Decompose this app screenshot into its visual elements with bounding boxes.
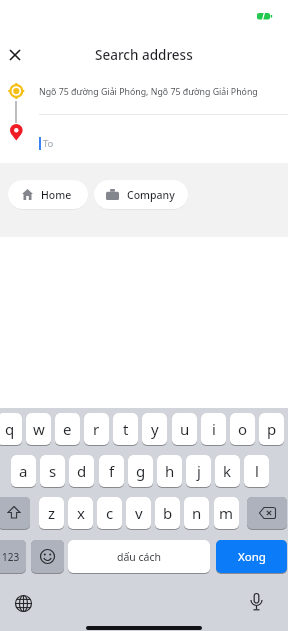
button[interactable]: l	[244, 455, 269, 487]
button[interactable]: Home	[8, 180, 88, 209]
staticText: e	[63, 419, 72, 439]
staticText: d	[77, 461, 87, 481]
button[interactable]: s	[40, 455, 65, 487]
staticText: g	[136, 461, 146, 481]
button[interactable]: b	[155, 497, 180, 529]
button[interactable]: t	[113, 413, 138, 445]
button[interactable]: j	[186, 455, 211, 487]
button[interactable]: To	[39, 136, 288, 151]
staticText: m	[219, 503, 234, 523]
staticText: b	[163, 503, 173, 523]
button[interactable]: n	[184, 497, 209, 529]
staticText: To	[43, 137, 54, 150]
staticText: Search address	[95, 46, 193, 64]
staticText: c	[106, 503, 114, 523]
staticText: Ngõ 75 đường Giải Phóng, Ngõ 75 đường Gi…	[39, 86, 258, 98]
staticText: p	[267, 419, 277, 439]
staticText: u	[180, 419, 190, 439]
button[interactable]: q	[0, 413, 22, 445]
staticText: dấu cách	[117, 550, 162, 564]
button[interactable]	[241, 586, 271, 618]
staticText: f	[109, 461, 115, 481]
button[interactable]: Ngõ 75 đường Giải Phóng, Ngõ 75 đường Gi…	[39, 84, 288, 100]
staticText: Company	[127, 188, 175, 202]
button[interactable]: i	[201, 413, 226, 445]
staticText: n	[192, 503, 202, 523]
button[interactable]	[8, 588, 38, 618]
button[interactable]: e	[55, 413, 80, 445]
staticText: a	[19, 461, 28, 481]
staticText: Home	[41, 188, 72, 202]
button[interactable]: Company	[94, 180, 188, 209]
button[interactable]	[31, 540, 64, 573]
staticText: y	[151, 419, 159, 439]
button[interactable]: dấu cách	[68, 540, 210, 573]
button[interactable]	[247, 497, 287, 529]
button[interactable]: a	[11, 455, 36, 487]
button[interactable]: m	[214, 497, 239, 529]
button[interactable]: g	[128, 455, 153, 487]
staticText: i	[212, 419, 216, 439]
staticText: k	[223, 461, 232, 481]
button[interactable]: d	[69, 455, 94, 487]
button[interactable]	[0, 497, 30, 529]
staticText: h	[165, 461, 175, 481]
staticText: z	[48, 503, 56, 523]
staticText: Xong	[238, 549, 266, 565]
staticText: w	[33, 419, 45, 439]
button[interactable]: w	[26, 413, 51, 445]
staticText: s	[49, 461, 57, 481]
staticText: t	[123, 419, 129, 439]
button[interactable]: c	[97, 497, 122, 529]
button[interactable]	[6, 46, 24, 64]
staticText: q	[5, 419, 15, 439]
button[interactable]: 123	[0, 540, 26, 573]
staticText: v	[135, 503, 143, 523]
button[interactable]: Xong	[216, 540, 287, 573]
staticText: l	[255, 461, 259, 481]
staticText: 123	[2, 550, 20, 564]
button[interactable]: o	[230, 413, 255, 445]
button[interactable]: v	[126, 497, 151, 529]
staticText: x	[77, 503, 85, 523]
staticText: o	[238, 419, 248, 439]
button[interactable]: u	[172, 413, 197, 445]
button[interactable]: z	[39, 497, 64, 529]
button[interactable]: x	[68, 497, 93, 529]
button[interactable]: p	[259, 413, 284, 445]
button[interactable]: f	[99, 455, 124, 487]
button[interactable]: y	[142, 413, 167, 445]
button[interactable]: k	[215, 455, 240, 487]
button[interactable]: r	[84, 413, 109, 445]
staticText: j	[197, 461, 201, 481]
button[interactable]: h	[157, 455, 182, 487]
staticText: r	[93, 419, 100, 439]
